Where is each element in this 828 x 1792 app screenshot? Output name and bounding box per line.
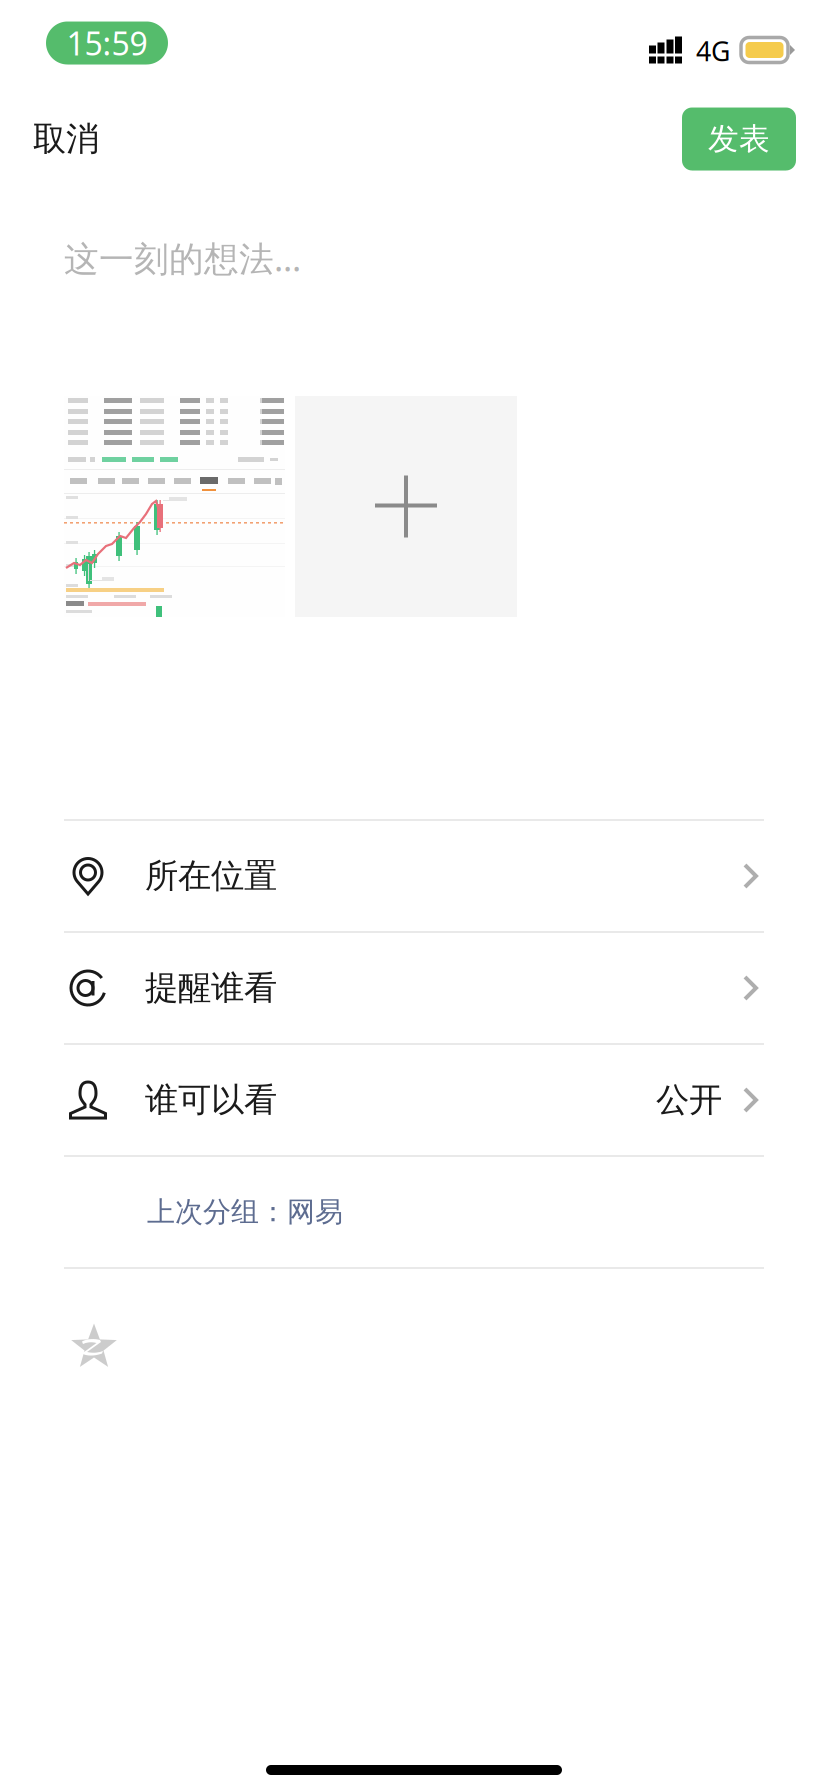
staticText: 取消	[33, 118, 99, 159]
staticText: 公开	[656, 1079, 722, 1120]
staticText: 这一刻的想法...	[64, 235, 301, 281]
button[interactable]: 提醒谁看	[0, 933, 828, 1043]
button[interactable]: 所在位置	[0, 821, 828, 931]
staticText: 4G	[696, 33, 730, 69]
button[interactable]: 添加图片	[295, 396, 517, 617]
staticText: 发表	[708, 120, 770, 158]
staticText: 所在位置	[145, 855, 277, 896]
button[interactable]: 发表	[682, 107, 796, 170]
button[interactable]: 谁可以看	[0, 1045, 828, 1155]
button[interactable]: 取消	[0, 96, 127, 182]
button[interactable]: 上次分组：网易	[0, 1157, 343, 1267]
button[interactable]: 已选图片	[64, 396, 285, 617]
staticText: 提醒谁看	[145, 967, 277, 1008]
staticText: 上次分组：网易	[147, 1195, 343, 1229]
staticText: 15:59	[66, 22, 147, 64]
staticText: 谁可以看	[145, 1079, 277, 1120]
